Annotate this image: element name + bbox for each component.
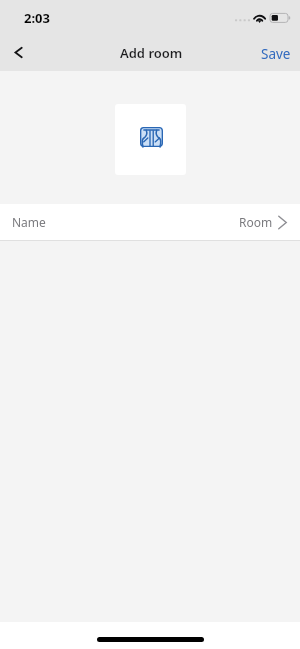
button[interactable]: Back <box>0 36 36 71</box>
staticText: 2:03 <box>24 9 50 27</box>
button[interactable]: Name <box>0 204 300 240</box>
staticText: Name <box>12 214 46 230</box>
button[interactable]: Save <box>251 39 300 68</box>
staticText: Room <box>239 214 273 230</box>
staticText: Add room <box>120 44 183 62</box>
staticText: Save <box>261 45 291 63</box>
